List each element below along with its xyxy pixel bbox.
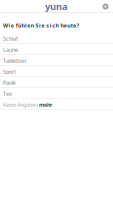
- button[interactable]: Settings: [100, 1, 111, 12]
- button[interactable]: Tee: [0, 88, 113, 99]
- button[interactable]: Laune: [0, 44, 113, 55]
- staticText: Keine Angaben: [3, 101, 38, 108]
- staticText: Sport: [3, 68, 16, 75]
- staticText: Tee: [3, 90, 12, 97]
- staticText: Schlaf: [3, 35, 18, 42]
- button[interactable]: Tabletten: [0, 55, 113, 66]
- button[interactable]: Panik: [0, 77, 113, 88]
- staticText: yuna: [45, 0, 68, 13]
- button[interactable]: Keine Angaben: [0, 99, 113, 110]
- staticText: Laune: [3, 46, 18, 53]
- staticText: mehr: [39, 101, 52, 108]
- button[interactable]: Sport: [0, 66, 113, 77]
- staticText: Panik: [3, 79, 16, 86]
- button[interactable]: Schlaf: [0, 33, 113, 44]
- staticText: Tabletten: [3, 57, 26, 64]
- staticText: Wie fühlen Sie sich heute?: [3, 22, 79, 29]
